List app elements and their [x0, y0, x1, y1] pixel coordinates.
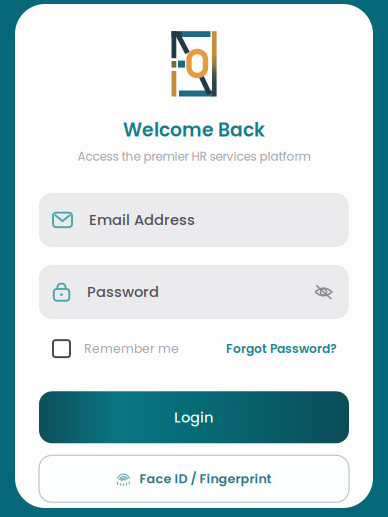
staticText: Remember me: [84, 340, 179, 357]
button[interactable]: Forgot Password?: [226, 340, 337, 357]
staticText: Forgot Password?: [226, 340, 337, 357]
staticText: Login: [174, 407, 214, 427]
button[interactable]: Email Address: [39, 193, 349, 247]
staticText: Password: [87, 282, 159, 302]
button[interactable]: Login: [39, 391, 349, 443]
button[interactable]: Face ID / Fingerprint: [39, 455, 349, 502]
staticText: Access the premier HR services platform: [77, 148, 310, 165]
button[interactable]: Password: [39, 265, 349, 319]
button[interactable]: Remember me: [53, 340, 179, 357]
staticText: Face ID / Fingerprint: [139, 470, 271, 488]
staticText: Welcome Back: [123, 117, 265, 143]
staticText: Email Address: [89, 210, 195, 230]
